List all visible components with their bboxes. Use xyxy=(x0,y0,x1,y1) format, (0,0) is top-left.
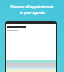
staticText: in your agenda xyxy=(20,10,45,15)
staticText: Discover all appointments xyxy=(10,4,54,9)
